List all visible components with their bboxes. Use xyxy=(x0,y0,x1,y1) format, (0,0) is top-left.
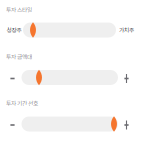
staticText: 투자 스타일 xyxy=(6,5,32,14)
staticText: 성장주 xyxy=(6,26,21,34)
button[interactable] xyxy=(0,68,141,86)
button[interactable] xyxy=(0,115,141,133)
staticText: 가치주 xyxy=(119,26,134,34)
staticText: 투자 기간 선호 xyxy=(6,99,38,107)
button[interactable]: 성장주 xyxy=(0,21,141,39)
staticText: 투자 금액대 xyxy=(6,52,32,61)
